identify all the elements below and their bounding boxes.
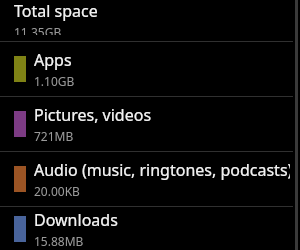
- button[interactable]: Total space: [0, 0, 300, 41]
- staticText: 20.00KB: [34, 183, 80, 199]
- staticText: Total space: [14, 0, 98, 22]
- staticText: 1.10GB: [34, 73, 75, 89]
- staticText: Apps: [34, 49, 72, 71]
- staticText: Pictures, videos: [34, 104, 152, 126]
- button[interactable]: Downloads: [0, 207, 300, 250]
- button[interactable]: Apps: [0, 42, 300, 96]
- staticText: 11.35GB: [14, 24, 62, 35]
- button[interactable]: Audio (music, ringtones, podcasts): [0, 152, 300, 206]
- button[interactable]: Pictures, videos: [0, 97, 300, 151]
- staticText: Downloads: [34, 209, 118, 231]
- staticText: 15.88MB: [34, 233, 84, 249]
- staticText: 721MB: [34, 128, 74, 144]
- staticText: Audio (music, ringtones, podcasts): [34, 159, 290, 181]
